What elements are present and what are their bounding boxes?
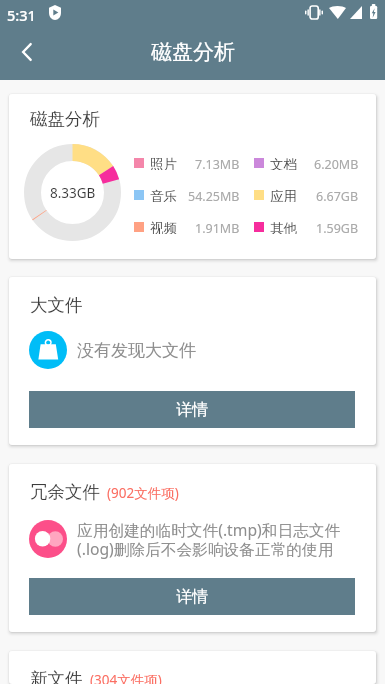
staticText: 视频: [150, 220, 177, 234]
staticText: 详情: [176, 400, 208, 420]
button[interactable]: 详情: [29, 391, 355, 428]
staticText: 没有发现大文件: [77, 340, 196, 361]
staticText: 8.33GB: [50, 184, 96, 202]
button[interactable]: 详情: [29, 578, 355, 615]
staticText: 音乐: [150, 188, 177, 202]
staticText: 5:31: [7, 5, 36, 25]
staticText: 应用创建的临时文件(.tmp)和日志文件 (.log)删除后不会影响设备正常的使…: [77, 519, 341, 559]
staticText: 1.59GB: [316, 220, 359, 234]
staticText: 磁盘分析: [151, 39, 235, 65]
staticText: 其他: [270, 220, 297, 234]
staticText: 新文件: [30, 668, 83, 684]
staticText: 详情: [176, 587, 208, 607]
staticText: 1.91MB: [195, 220, 240, 234]
staticText: (304文件项): [90, 671, 162, 684]
staticText: 6.20MB: [314, 156, 359, 170]
staticText: 54.25MB: [188, 188, 240, 202]
staticText: 应用: [270, 188, 297, 202]
staticText: 7.13MB: [195, 156, 240, 170]
staticText: 磁盘分析: [30, 108, 100, 130]
staticText: 冗余文件: [30, 481, 100, 503]
staticText: 文档: [270, 156, 297, 170]
staticText: (902文件项): [107, 484, 179, 502]
staticText: 照片: [150, 156, 177, 170]
staticText: 6.67GB: [316, 188, 359, 202]
button[interactable]: Back: [5, 30, 49, 74]
staticText: 大文件: [30, 294, 83, 316]
